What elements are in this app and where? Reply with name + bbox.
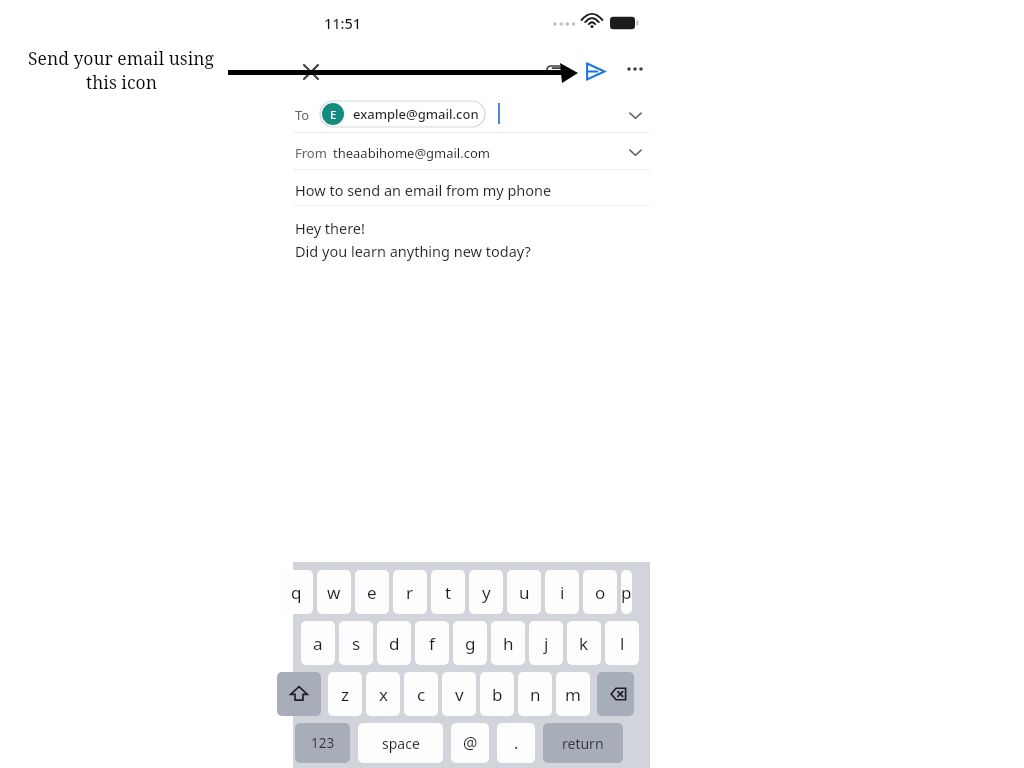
- button[interactable]: q: [279, 570, 313, 614]
- staticText: p: [621, 581, 632, 604]
- button[interactable]: x: [366, 672, 400, 716]
- staticText: c: [417, 683, 426, 706]
- staticText: x: [379, 683, 388, 706]
- button[interactable]: Close: [293, 54, 329, 90]
- button[interactable]: f: [415, 621, 449, 665]
- button[interactable]: l: [605, 621, 639, 665]
- button[interactable]: Attach file: [538, 54, 572, 88]
- button[interactable]: Backspace: [597, 672, 634, 716]
- button[interactable]: Send: [578, 54, 612, 88]
- staticText: d: [389, 632, 400, 655]
- button[interactable]: h: [491, 621, 525, 665]
- staticText: i: [560, 581, 565, 604]
- staticText: space: [382, 734, 420, 753]
- staticText: @: [463, 732, 478, 754]
- button[interactable]: z: [328, 672, 362, 716]
- button[interactable]: p: [621, 570, 632, 614]
- staticText: How to send an email from my phone: [295, 180, 552, 200]
- staticText: f: [429, 632, 435, 655]
- button[interactable]: More options: [620, 54, 650, 84]
- button[interactable]: e: [355, 570, 389, 614]
- button[interactable]: a: [301, 621, 335, 665]
- button[interactable]: o: [583, 570, 617, 614]
- staticText: this icon: [86, 70, 157, 94]
- button[interactable]: u: [507, 570, 541, 614]
- staticText: n: [530, 683, 541, 706]
- button[interactable]: d: [377, 621, 411, 665]
- button[interactable]: j: [529, 621, 563, 665]
- button[interactable]: k: [567, 621, 601, 665]
- button[interactable]: r: [393, 570, 427, 614]
- staticText: .: [514, 732, 519, 754]
- button[interactable]: E: [320, 101, 492, 127]
- staticText: y: [482, 581, 491, 604]
- staticText: a: [313, 632, 323, 655]
- button[interactable]: .: [497, 723, 535, 763]
- button[interactable]: From: [293, 133, 650, 169]
- button[interactable]: g: [453, 621, 487, 665]
- staticText: b: [492, 683, 503, 706]
- button[interactable]: y: [469, 570, 503, 614]
- button[interactable]: Expand: [627, 107, 644, 124]
- button[interactable]: space: [358, 723, 443, 763]
- staticText: Hey there!: [295, 218, 365, 238]
- button[interactable]: t: [431, 570, 465, 614]
- staticText: example@gmail.con: [353, 105, 479, 123]
- button[interactable]: w: [317, 570, 351, 614]
- staticText: q: [291, 581, 302, 604]
- staticText: return: [562, 734, 604, 753]
- staticText: g: [465, 632, 476, 655]
- button[interactable]: s: [339, 621, 373, 665]
- button[interactable]: Expand: [627, 144, 644, 161]
- button[interactable]: Hey there!: [293, 218, 650, 261]
- button[interactable]: b: [480, 672, 514, 716]
- button[interactable]: Shift: [277, 672, 321, 716]
- staticText: 123: [311, 734, 335, 752]
- staticText: theaabihome@gmail.com: [333, 144, 490, 162]
- staticText: E: [330, 107, 337, 122]
- button[interactable]: 123: [295, 723, 350, 763]
- staticText: m: [565, 683, 581, 706]
- staticText: s: [352, 632, 361, 655]
- button[interactable]: m: [556, 672, 590, 716]
- staticText: h: [503, 632, 514, 655]
- staticText: k: [579, 632, 589, 655]
- button[interactable]: i: [545, 570, 579, 614]
- staticText: t: [445, 581, 452, 604]
- staticText: u: [519, 581, 530, 604]
- staticText: z: [341, 683, 349, 706]
- button[interactable]: To: [293, 96, 650, 132]
- button[interactable]: @: [451, 723, 489, 763]
- button[interactable]: v: [442, 672, 476, 716]
- staticText: Send your email using: [28, 46, 214, 70]
- staticText: e: [367, 581, 377, 604]
- staticText: o: [595, 581, 606, 604]
- button[interactable]: n: [518, 672, 552, 716]
- staticText: l: [620, 632, 625, 655]
- staticText: 11:51: [324, 13, 362, 33]
- button[interactable]: return: [543, 723, 623, 763]
- staticText: j: [544, 632, 549, 655]
- staticText: r: [406, 581, 414, 604]
- staticText: Did you learn anything new today?: [295, 241, 531, 261]
- staticText: To: [295, 106, 310, 124]
- button[interactable]: c: [404, 672, 438, 716]
- staticText: v: [455, 683, 464, 706]
- button[interactable]: How to send an email from my phone: [293, 170, 650, 205]
- staticText: From: [295, 144, 327, 162]
- staticText: w: [327, 581, 341, 604]
